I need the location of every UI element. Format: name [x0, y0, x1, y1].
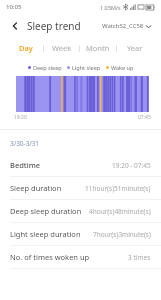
staticText: 7hour(s)3minute(s) — [93, 230, 151, 239]
staticText: Wake up — [111, 64, 134, 71]
staticText: Sleep duration — [10, 183, 62, 193]
staticText: No. of times woken up — [10, 252, 90, 262]
button[interactable]: Deep sleep duration — [0, 200, 161, 222]
button[interactable]: Bedtime — [0, 154, 161, 176]
button[interactable]: Month — [80, 43, 116, 53]
staticText: 07:45 — [138, 114, 151, 121]
staticText: Light sleep — [72, 64, 101, 71]
staticText: Bedtime — [10, 160, 41, 170]
staticText: 19:20 — [14, 114, 27, 121]
button[interactable]: Day — [8, 43, 43, 53]
button[interactable]: Back — [6, 17, 24, 35]
staticText: Week — [52, 43, 72, 53]
staticText: 19:20 - 07:45 — [112, 161, 151, 170]
button[interactable]: Light sleep duration — [0, 223, 161, 245]
staticText: Year — [127, 43, 143, 53]
button[interactable]: Week — [44, 43, 79, 53]
staticText: 3 times — [128, 253, 151, 262]
staticText: Month — [86, 43, 110, 53]
staticText: 11hour(s)51minute(s) — [85, 184, 151, 193]
staticText: 4hour(s)48minute(s) — [89, 207, 151, 216]
staticText: 1.03M/s — [100, 4, 121, 11]
staticText: Day — [19, 43, 33, 53]
staticText: WatchS2_CC58 — [102, 22, 144, 30]
staticText: Light sleep duration — [10, 229, 81, 239]
button[interactable]: WatchS2_CC58 — [100, 20, 153, 32]
staticText: Sleep trend — [27, 19, 81, 33]
button[interactable]: Sleep duration — [0, 177, 161, 199]
staticText: Deep sleep duration — [10, 206, 82, 216]
staticText: Deep sleep — [33, 64, 62, 71]
button[interactable]: No. of times woken up — [0, 246, 161, 268]
button[interactable]: Year — [117, 43, 153, 53]
staticText: 10:05 — [6, 3, 22, 11]
staticText: 3/30-3/31 — [10, 139, 40, 148]
